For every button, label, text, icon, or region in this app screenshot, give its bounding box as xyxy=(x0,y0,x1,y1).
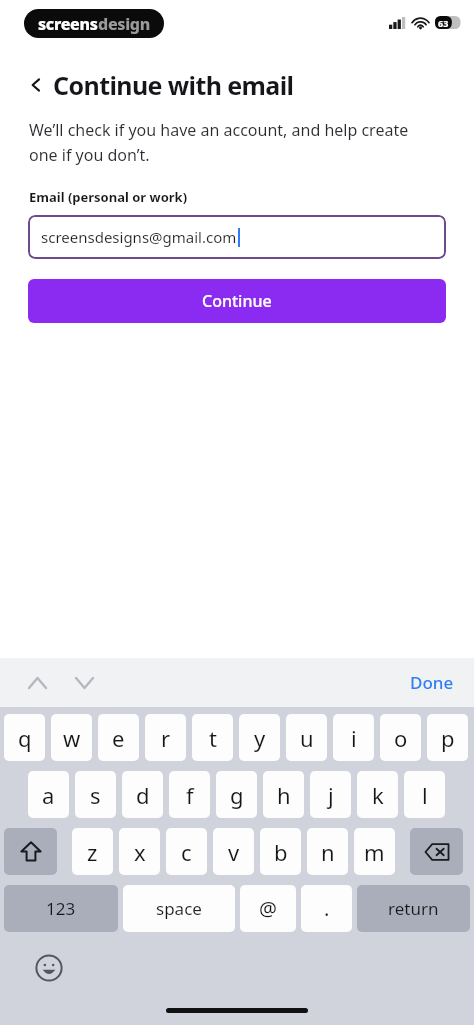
button[interactable]: q xyxy=(4,714,45,761)
button[interactable]: d xyxy=(122,771,163,818)
button[interactable]: Done xyxy=(390,665,474,700)
button[interactable]: j xyxy=(310,771,351,818)
staticText: a xyxy=(42,780,55,810)
staticText: We’ll check if you have an account, and … xyxy=(29,119,409,165)
staticText: . xyxy=(324,895,330,922)
staticText: Continue with email xyxy=(53,68,294,102)
button[interactable]: k xyxy=(357,771,398,818)
staticText: Continue xyxy=(202,290,272,312)
button[interactable]: f xyxy=(169,771,210,818)
button[interactable]: r xyxy=(145,714,186,761)
button[interactable]: return xyxy=(357,885,470,932)
staticText: return xyxy=(388,897,439,920)
staticText: j xyxy=(328,780,334,810)
button[interactable]: x xyxy=(119,828,160,875)
button[interactable]: screens xyxy=(24,9,164,38)
button[interactable]: @ xyxy=(240,885,296,932)
button[interactable]: g xyxy=(216,771,257,818)
staticText: w xyxy=(63,723,81,753)
staticText: space xyxy=(156,897,202,920)
button[interactable]: i xyxy=(333,714,374,761)
button[interactable]: Previous field xyxy=(22,668,52,698)
button[interactable]: t xyxy=(192,714,233,761)
button[interactable]: c xyxy=(166,828,207,875)
staticText: g xyxy=(230,780,244,810)
staticText: 63 xyxy=(438,17,449,29)
staticText: h xyxy=(277,780,291,810)
button[interactable]: e xyxy=(98,714,139,761)
button[interactable]: s xyxy=(75,771,116,818)
staticText: @ xyxy=(259,895,277,922)
staticText: m xyxy=(364,837,385,867)
staticText: i xyxy=(351,723,357,753)
button[interactable]: h xyxy=(263,771,304,818)
staticText: z xyxy=(87,837,98,867)
staticText: l xyxy=(422,780,428,810)
staticText: e xyxy=(112,723,125,753)
button[interactable]: y xyxy=(239,714,280,761)
staticText: screens xyxy=(38,13,98,35)
button[interactable]: n xyxy=(307,828,348,875)
button[interactable]: z xyxy=(72,828,113,875)
button[interactable]: space xyxy=(123,885,235,932)
staticText: k xyxy=(372,780,384,810)
button[interactable]: w xyxy=(51,714,92,761)
staticText: b xyxy=(274,837,288,867)
button[interactable]: u xyxy=(286,714,327,761)
staticText: v xyxy=(228,837,240,867)
staticText: q xyxy=(18,723,32,753)
staticText: screensdesigns@gmail.com xyxy=(41,227,237,247)
button[interactable]: key xyxy=(4,828,57,875)
button[interactable]: Continue xyxy=(28,279,446,323)
button[interactable]: l xyxy=(404,771,445,818)
staticText: x xyxy=(134,837,146,867)
staticText: t xyxy=(209,723,217,753)
staticText: o xyxy=(394,723,408,753)
button[interactable]: screensdesigns@gmail.com xyxy=(28,215,446,259)
staticText: design xyxy=(98,13,150,35)
staticText: Email (personal or work) xyxy=(29,188,188,206)
staticText: n xyxy=(321,837,335,867)
staticText: f xyxy=(186,780,194,810)
staticText: Done xyxy=(410,671,454,694)
staticText: y xyxy=(254,723,266,753)
button[interactable]: v xyxy=(213,828,254,875)
button[interactable]: . xyxy=(301,885,352,932)
staticText: c xyxy=(181,837,192,867)
button[interactable]: key xyxy=(410,828,463,875)
staticText: d xyxy=(136,780,150,810)
staticText: u xyxy=(300,723,314,753)
staticText: 123 xyxy=(46,897,76,920)
button[interactable]: a xyxy=(28,771,69,818)
button[interactable]: Next field xyxy=(69,668,99,698)
staticText: r xyxy=(161,723,171,753)
staticText: s xyxy=(90,780,101,810)
button[interactable]: p xyxy=(427,714,468,761)
button[interactable]: m xyxy=(354,828,395,875)
button[interactable]: Back xyxy=(26,75,46,95)
button[interactable]: o xyxy=(380,714,421,761)
button[interactable]: b xyxy=(260,828,301,875)
button[interactable]: 123 xyxy=(4,885,118,932)
button[interactable]: Emoji xyxy=(33,952,65,984)
staticText: p xyxy=(441,723,455,753)
